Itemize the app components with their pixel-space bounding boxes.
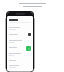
button[interactable]: Add [26, 46, 31, 51]
button[interactable] [7, 58, 33, 62]
button[interactable] [7, 38, 33, 44]
button[interactable]: Open item [7, 32, 33, 36]
button[interactable] [7, 45, 33, 49]
button[interactable] [7, 25, 33, 31]
button[interactable] [7, 51, 33, 57]
button[interactable] [7, 64, 33, 69]
other: Open item [28, 33, 31, 36]
